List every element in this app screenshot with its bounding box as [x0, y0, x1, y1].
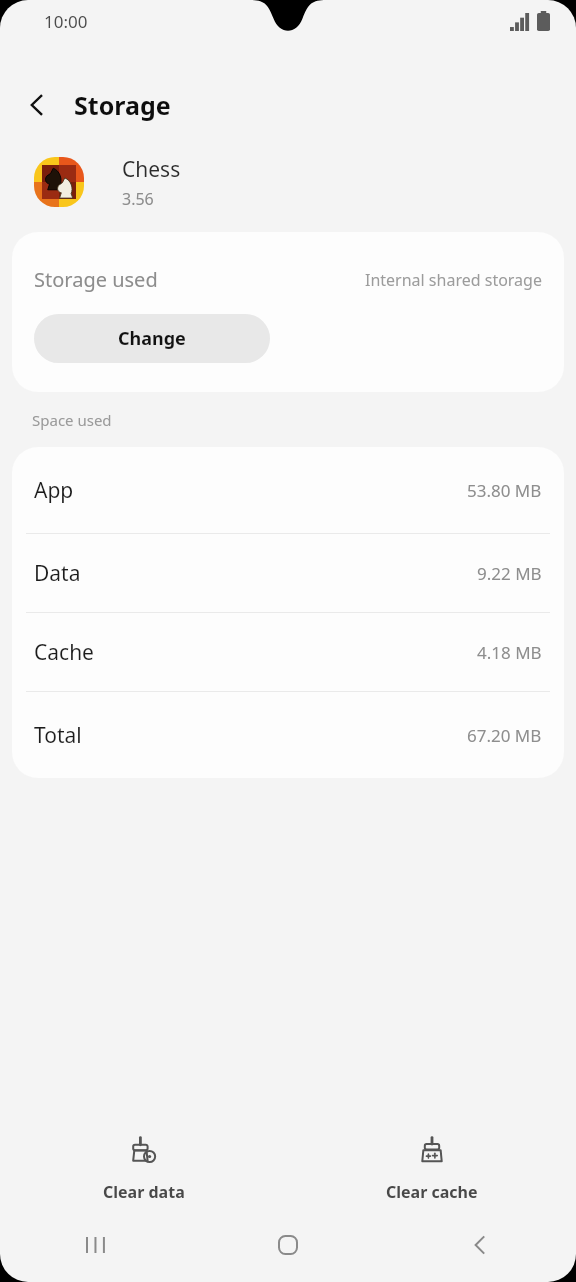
- staticText: 9.22 MB: [477, 562, 542, 585]
- staticText: 4.18 MB: [477, 641, 542, 664]
- staticText: Data: [34, 559, 81, 588]
- staticText: 3.56: [122, 188, 154, 210]
- button[interactable]: Cache: [12, 613, 564, 691]
- staticText: Space used: [32, 410, 112, 430]
- button[interactable]: Back: [384, 1222, 576, 1268]
- staticText: Storage: [74, 88, 171, 122]
- staticText: 10:00: [44, 10, 88, 33]
- staticText: Cache: [34, 638, 94, 667]
- staticText: 53.80 MB: [467, 479, 542, 502]
- staticText: Storage used: [34, 266, 158, 293]
- staticText: Clear cache: [386, 1181, 478, 1203]
- button[interactable]: Home: [192, 1222, 384, 1268]
- staticText: Chess: [122, 155, 181, 184]
- button[interactable]: App: [12, 447, 564, 533]
- button[interactable]: Data: [12, 534, 564, 612]
- button[interactable]: Back: [0, 78, 74, 132]
- staticText: App: [34, 476, 74, 505]
- button[interactable]: Total: [12, 692, 564, 778]
- staticText: Internal shared storage: [365, 269, 542, 291]
- button[interactable]: Change: [34, 314, 270, 363]
- button[interactable]: Clear cache: [288, 1126, 576, 1211]
- button[interactable]: Clear data: [0, 1126, 288, 1211]
- staticText: Clear data: [103, 1181, 185, 1203]
- staticText: 67.20 MB: [467, 724, 542, 747]
- staticText: Total: [34, 721, 82, 750]
- button[interactable]: Recent apps: [0, 1222, 192, 1268]
- staticText: Change: [118, 326, 186, 351]
